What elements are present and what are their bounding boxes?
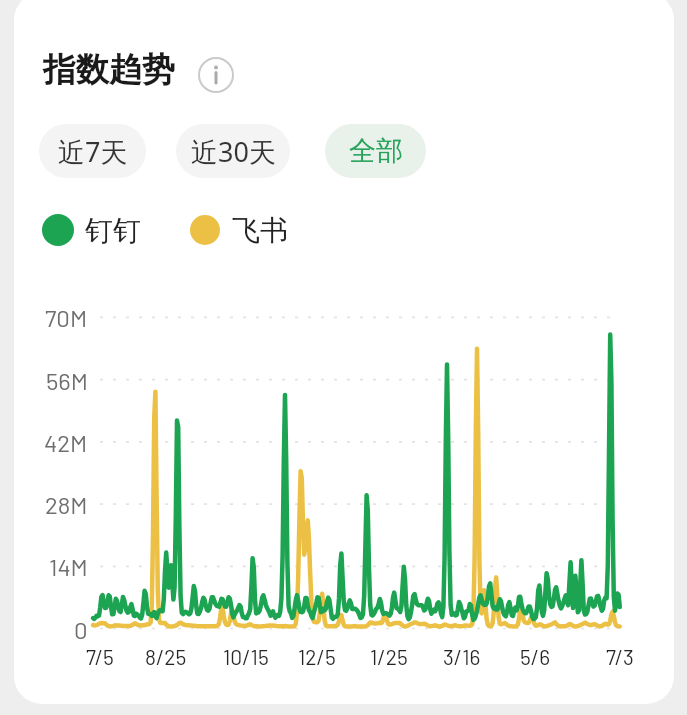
staticText: 56M	[46, 366, 88, 395]
staticText: 12/5	[298, 644, 336, 669]
staticText: 8/25	[145, 644, 187, 669]
staticText: 70M	[45, 303, 88, 332]
staticText: 5/6	[520, 644, 551, 669]
staticText: 14M	[49, 552, 88, 581]
staticText: 飞书	[232, 213, 288, 248]
staticText: 1/25	[370, 644, 408, 669]
staticText: 7/5	[86, 644, 114, 669]
staticText: 近7天	[58, 133, 128, 170]
staticText: 近30天	[191, 133, 276, 170]
staticText: 3/16	[443, 644, 481, 669]
staticText: 全部	[349, 134, 403, 168]
staticText: 10/15	[223, 644, 269, 669]
staticText: 42M	[44, 428, 88, 457]
button[interactable]: 近30天	[176, 124, 290, 178]
button[interactable]: 全部	[325, 124, 426, 178]
staticText: 7/3	[606, 644, 634, 669]
staticText: 28M	[45, 490, 88, 519]
button[interactable]: 近7天	[39, 124, 146, 178]
staticText: 钉钉	[85, 213, 141, 248]
staticText: 0	[74, 615, 88, 644]
staticText: 指数趋势	[43, 49, 175, 91]
button[interactable]	[197, 56, 235, 94]
